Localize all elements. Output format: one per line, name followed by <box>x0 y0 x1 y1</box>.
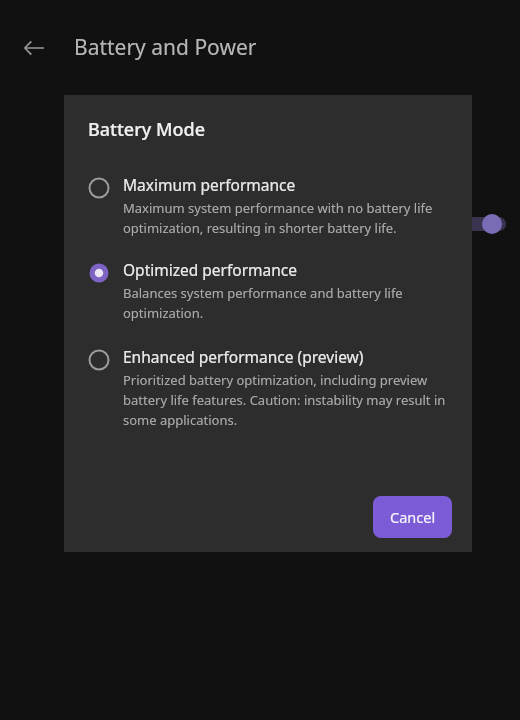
staticText: Optimized performance <box>123 259 298 280</box>
staticText: Enhanced performance (preview) <box>123 346 364 367</box>
staticText: Maximum performance <box>123 174 296 195</box>
button[interactable]: Back <box>14 28 54 68</box>
staticText: Battery Mode <box>88 117 205 142</box>
button[interactable]: Maximum performance <box>88 172 452 239</box>
staticText: Prioritized battery optimization, includ… <box>123 369 452 429</box>
staticText: Battery and Power <box>74 33 257 62</box>
staticText: Maximum system performance with no batte… <box>123 197 452 237</box>
staticText: Cancel <box>390 507 436 527</box>
button[interactable]: Enhanced performance (preview) <box>88 344 452 431</box>
staticText: Balances system performance and battery … <box>123 282 452 322</box>
button[interactable]: Optimized performance <box>88 257 452 324</box>
button[interactable]: Cancel <box>373 496 452 538</box>
